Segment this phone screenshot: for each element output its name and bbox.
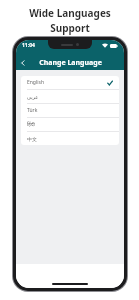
staticText: Support (50, 21, 90, 35)
staticText: English (27, 79, 45, 86)
staticText: 11:04 (22, 42, 35, 49)
button[interactable]: 中文 (21, 132, 119, 145)
staticText: Türk (27, 107, 38, 114)
button[interactable]: Türk (21, 104, 119, 117)
staticText: 中文 (27, 136, 37, 142)
button[interactable]: English (21, 76, 119, 89)
staticText: Wide Languages (29, 6, 111, 20)
button[interactable]: हिंदी (21, 118, 119, 131)
staticText: हिंदी (27, 121, 35, 128)
staticText: عربى (27, 94, 39, 100)
staticText: Change Language (39, 58, 102, 68)
button[interactable]: Back (16, 56, 30, 70)
button[interactable]: عربى (21, 90, 119, 103)
